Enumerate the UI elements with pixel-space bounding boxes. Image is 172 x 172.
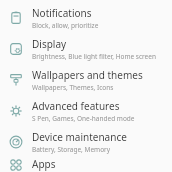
staticText: Battery, Storage, Memory	[32, 145, 111, 154]
button[interactable]: Apps	[0, 157, 172, 172]
staticText: Wallpapers and themes	[32, 68, 143, 82]
staticText: S Pen, Games, One-handed mode	[32, 114, 135, 123]
button[interactable]: Advanced features	[0, 95, 172, 126]
staticText: Wallpapers, Themes, Icons	[32, 83, 114, 92]
staticText: Notifications	[32, 6, 92, 20]
staticText: Block, allow, prioritize	[32, 21, 99, 30]
button[interactable]: Display	[0, 33, 172, 64]
other: Advanced features	[8, 103, 23, 118]
staticText: Apps	[32, 157, 56, 171]
other: Wallpapers and themes	[8, 72, 23, 87]
staticText: Brightness, Blue light filter, Home scre…	[32, 52, 156, 61]
staticText: Advanced features	[32, 99, 120, 113]
other: Apps	[8, 157, 23, 172]
button[interactable]: Device maintenance	[0, 126, 172, 157]
other: Notifications	[8, 10, 23, 25]
button[interactable]: Notifications	[0, 2, 172, 33]
other: Display	[8, 41, 23, 56]
staticText: Display	[32, 37, 67, 51]
other: Device maintenance	[8, 134, 23, 149]
staticText: Device maintenance	[32, 130, 127, 144]
button[interactable]: Wallpapers and themes	[0, 64, 172, 95]
